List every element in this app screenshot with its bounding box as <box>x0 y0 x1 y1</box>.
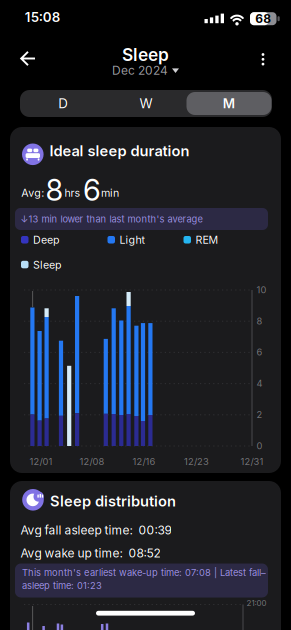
staticText: asleep time: 01:23 <box>22 580 102 591</box>
staticText: 2 <box>256 409 262 420</box>
staticText: 4 <box>256 378 262 389</box>
staticText: 6 <box>83 173 101 207</box>
button[interactable]: W <box>0 0 83 27</box>
staticText: 15:08 <box>25 9 61 25</box>
staticText: M <box>223 96 235 111</box>
staticText: This month's earliest wake-up time: 07:0… <box>22 567 266 578</box>
staticText: Deep <box>33 234 60 246</box>
button[interactable]: M <box>0 0 83 27</box>
button[interactable] <box>14 46 42 71</box>
staticText: 68 <box>255 12 271 26</box>
staticText: REM <box>195 234 218 246</box>
staticText: Dec 2024 <box>112 63 168 77</box>
button[interactable]: Dec 2024 <box>105 63 185 77</box>
button[interactable] <box>252 46 274 71</box>
staticText: 0 <box>256 440 262 451</box>
staticText: 21:00 <box>246 598 266 608</box>
staticText: hrs <box>64 186 80 199</box>
staticText: Sleep distribution <box>50 492 176 510</box>
staticText: 12/16 <box>132 456 155 467</box>
staticText: 8 <box>45 173 63 207</box>
staticText: 12/01 <box>29 456 52 467</box>
staticText: 12/23 <box>184 456 209 467</box>
staticText: 10 <box>256 284 266 295</box>
staticText: 12/08 <box>79 456 104 467</box>
staticText: Avg fall asleep time: 00:39 <box>20 523 171 537</box>
staticText: W <box>140 96 153 111</box>
staticText: min <box>101 186 119 199</box>
staticText: ↓13 min lower than last month's average <box>20 214 202 225</box>
staticText: Ideal sleep duration <box>49 142 189 160</box>
staticText: 8 <box>256 315 262 326</box>
staticText: 12/31 <box>240 456 263 467</box>
staticText: 6 <box>256 347 262 358</box>
button[interactable]: D <box>0 0 83 27</box>
staticText: Avg wake up time: 08:52 <box>20 546 160 560</box>
staticText: Sleep <box>33 258 62 271</box>
staticText: Sleep <box>122 44 169 65</box>
staticText: Light <box>119 234 144 246</box>
staticText: Avg: <box>21 186 44 199</box>
staticText: D <box>58 96 68 111</box>
